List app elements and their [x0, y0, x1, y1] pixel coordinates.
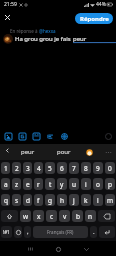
staticText: v — [63, 212, 67, 221]
staticText: y — [60, 180, 64, 189]
button[interactable]: Home — [51, 242, 65, 256]
button[interactable]: i — [81, 178, 91, 190]
button[interactable]: Backspace — [98, 210, 115, 222]
staticText: @hexxa — [39, 28, 56, 34]
staticText: . — [93, 228, 95, 236]
button[interactable]: Character count — [103, 131, 113, 141]
button[interactable]: 3 — [23, 162, 32, 174]
staticText: 3 — [26, 164, 30, 173]
staticText: a — [4, 180, 8, 189]
button[interactable]: 7 — [69, 162, 79, 174]
button[interactable]: Symbols — [1, 226, 12, 238]
staticText: 0 — [108, 164, 112, 173]
button[interactable]: More options — [102, 144, 114, 160]
button[interactable]: c — [46, 210, 57, 222]
staticText: c — [50, 212, 54, 221]
button[interactable]: h — [57, 194, 67, 206]
button[interactable]: m — [105, 194, 115, 206]
button[interactable]: w — [20, 210, 31, 222]
button[interactable]: Back — [79, 242, 93, 256]
staticText: l — [97, 196, 99, 205]
staticText: h — [60, 196, 65, 205]
staticText: Ha grou grou je fais — [15, 35, 73, 43]
staticText: 8 — [84, 164, 88, 173]
staticText: peur — [21, 148, 35, 156]
button[interactable]: Emoji suggestion — [83, 144, 95, 160]
button[interactable]: Shift — [1, 210, 18, 222]
button[interactable]: e — [23, 178, 32, 190]
button[interactable]: t — [45, 178, 55, 190]
button[interactable]: Comma — [24, 226, 31, 238]
staticText: 44% — [96, 1, 106, 8]
button[interactable]: z — [12, 178, 21, 190]
staticText: 4 — [37, 164, 41, 173]
button[interactable]: Previous suggestions — [1, 144, 14, 157]
staticText: 6 — [60, 164, 64, 173]
staticText: g — [48, 196, 52, 205]
button[interactable]: p — [105, 178, 115, 190]
staticText: Français (FR) — [47, 229, 74, 235]
staticText: w — [23, 212, 29, 221]
button[interactable]: Period — [90, 226, 97, 238]
staticText: 7 — [72, 164, 76, 173]
button[interactable]: Schedule — [29, 129, 43, 143]
button[interactable]: 6 — [57, 162, 67, 174]
button[interactable]: j — [69, 194, 79, 206]
staticText: m — [107, 196, 114, 205]
staticText: p — [108, 180, 112, 189]
staticText: , — [27, 228, 29, 236]
button[interactable]: y — [57, 178, 67, 190]
staticText: x — [37, 212, 41, 221]
button[interactable]: Location — [57, 129, 71, 143]
staticText: i — [85, 180, 87, 189]
button[interactable]: b — [72, 210, 83, 222]
button[interactable]: q — [1, 194, 10, 206]
button[interactable]: r — [34, 178, 43, 190]
button[interactable]: 9 — [93, 162, 103, 174]
staticText: 1 — [4, 164, 8, 173]
staticText: 2 — [15, 164, 19, 173]
staticText: 21:59 — [4, 1, 17, 8]
staticText: peur — [73, 35, 87, 43]
button[interactable]: f — [34, 194, 43, 206]
button[interactable]: d — [23, 194, 32, 206]
button[interactable]: l — [93, 194, 103, 206]
button[interactable]: s — [12, 194, 21, 206]
button[interactable]: Recent apps — [23, 242, 37, 256]
button[interactable]: Emoji — [14, 226, 22, 238]
button[interactable]: Enter — [99, 226, 115, 238]
button[interactable]: Répondre — [75, 13, 113, 24]
button[interactable]: 8 — [81, 162, 91, 174]
button[interactable]: g — [45, 194, 55, 206]
button[interactable]: x — [33, 210, 44, 222]
staticText: u — [72, 180, 77, 189]
button[interactable]: v — [59, 210, 70, 222]
button[interactable]: Français (FR) — [33, 226, 88, 238]
button[interactable]: pour — [51, 144, 77, 160]
staticText: n — [88, 212, 93, 221]
button[interactable]: Close — [1, 11, 14, 24]
button[interactable]: 4 — [34, 162, 43, 174]
staticText: pour — [57, 148, 71, 156]
button[interactable]: GIF — [15, 129, 29, 143]
button[interactable]: k — [81, 194, 91, 206]
staticText: z — [15, 180, 19, 189]
staticText: 9 — [96, 164, 100, 173]
button[interactable]: peur — [15, 144, 41, 160]
button[interactable]: 0 — [105, 162, 115, 174]
button[interactable]: 1 — [1, 162, 10, 174]
button[interactable]: 5 — [45, 162, 55, 174]
button[interactable]: 2 — [12, 162, 21, 174]
staticText: b — [76, 212, 80, 221]
staticText: d — [26, 196, 30, 205]
button[interactable]: Poll — [43, 129, 57, 143]
button[interactable]: u — [69, 178, 79, 190]
button[interactable]: o — [93, 178, 103, 190]
staticText: En réponse à — [10, 28, 39, 34]
staticText: !#1 — [3, 229, 10, 235]
staticText: t — [49, 180, 52, 189]
button[interactable]: a — [1, 178, 10, 190]
button[interactable]: Add photo — [1, 129, 15, 143]
staticText: s — [15, 196, 19, 205]
button[interactable]: n — [85, 210, 96, 222]
